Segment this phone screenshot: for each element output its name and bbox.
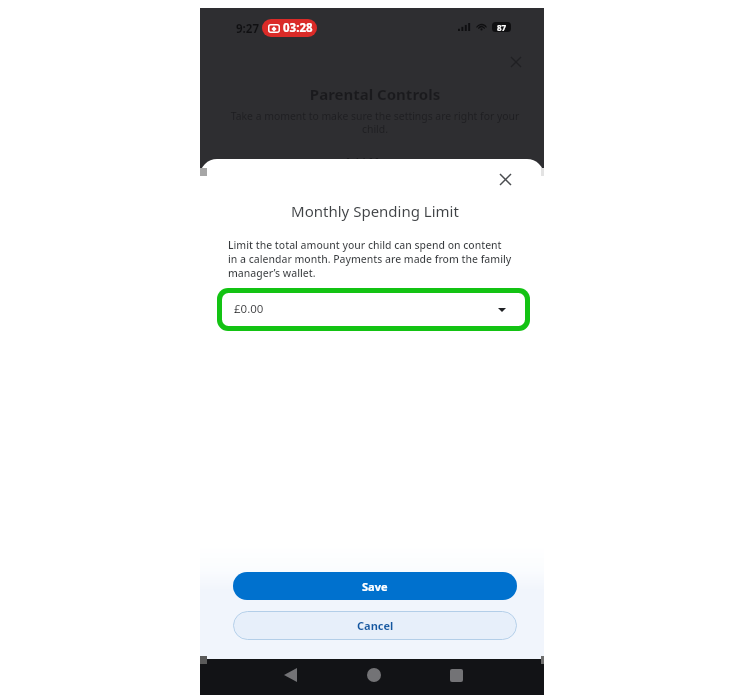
staticText: Save — [362, 579, 388, 594]
button[interactable]: £0.00 — [222, 293, 525, 326]
button[interactable]: Cancel — [233, 611, 517, 640]
button[interactable]: Back — [272, 657, 308, 693]
staticText: £0.00 — [234, 301, 264, 317]
button[interactable]: Close — [505, 51, 527, 73]
staticText: Limit the total amount your child can sp… — [228, 238, 520, 280]
staticText: Parental Controls — [203, 84, 547, 104]
button[interactable]: Save — [233, 572, 517, 600]
staticText: Cancel — [357, 618, 394, 633]
button[interactable]: Home — [356, 657, 392, 693]
button[interactable]: Recents — [438, 657, 474, 693]
button[interactable]: Close dialog — [494, 168, 516, 190]
staticText: Take a moment to make sure the settings … — [203, 109, 547, 136]
staticText: Add Money — [203, 154, 547, 169]
staticText: 9:27 — [236, 21, 259, 37]
staticText: Monthly Spending Limit — [203, 201, 544, 221]
staticText: 87 — [497, 22, 507, 32]
staticText: 03:28 — [283, 20, 313, 36]
